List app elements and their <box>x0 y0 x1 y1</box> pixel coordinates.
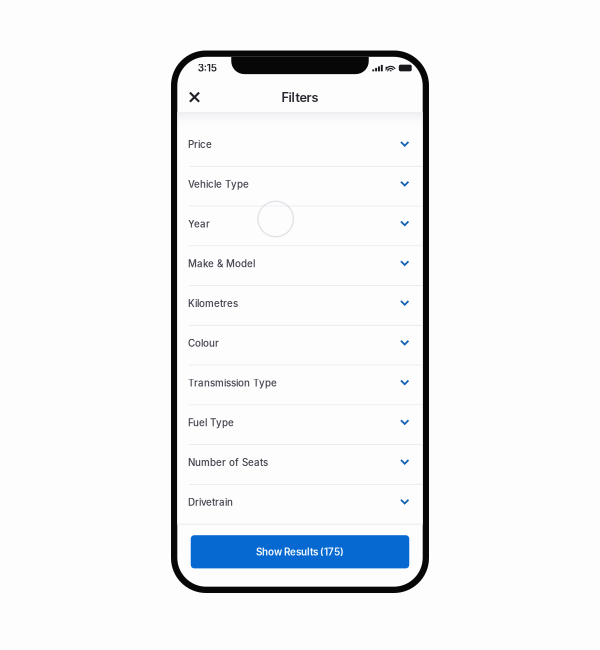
staticText: Transmission Type <box>188 377 277 389</box>
button[interactable]: Year <box>177 207 423 246</box>
button[interactable]: Fuel Type <box>177 405 423 445</box>
button[interactable]: Make & Model <box>177 246 423 286</box>
button[interactable]: Price <box>177 127 423 167</box>
button[interactable]: Drivetrain <box>177 485 423 525</box>
button[interactable]: Colour <box>177 326 423 366</box>
staticText: Drivetrain <box>188 496 233 508</box>
staticText: Kilometres <box>188 298 238 309</box>
staticText: 3:15 <box>198 62 217 74</box>
button[interactable]: Kilometres <box>177 286 423 326</box>
button[interactable]: Vehicle Type <box>177 167 423 207</box>
staticText: Year <box>188 218 210 230</box>
staticText: Show Results (175) <box>256 546 344 558</box>
staticText: Colour <box>188 337 219 349</box>
button[interactable]: Number of Seats <box>177 445 423 485</box>
staticText: Number of Seats <box>188 457 268 468</box>
staticText: Fuel Type <box>188 417 234 429</box>
staticText: Make & Model <box>188 258 255 270</box>
button[interactable]: Close <box>181 82 207 108</box>
button[interactable]: Transmission Type <box>177 366 423 405</box>
staticText: Price <box>188 139 212 150</box>
button[interactable]: Show Results (175) <box>191 535 409 568</box>
staticText: Filters <box>281 90 318 105</box>
staticText: Vehicle Type <box>188 178 249 190</box>
